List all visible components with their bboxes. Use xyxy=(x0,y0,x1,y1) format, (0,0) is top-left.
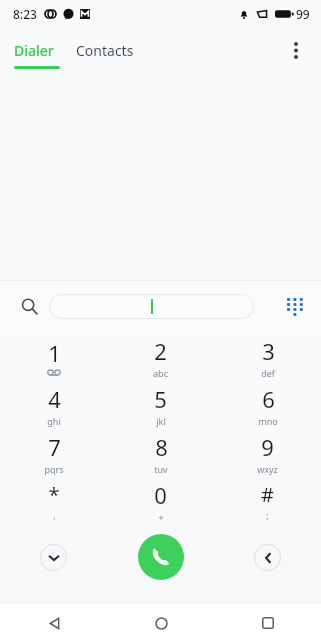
staticText: 6 xyxy=(262,384,275,414)
staticText: pqrs xyxy=(44,463,64,475)
staticText: 7 xyxy=(48,432,61,462)
staticText: tuv xyxy=(154,463,168,475)
button[interactable]: Dialpad xyxy=(279,290,311,322)
button[interactable]: 1 xyxy=(0,333,107,381)
button[interactable]: Back xyxy=(35,604,73,642)
button[interactable]: Home xyxy=(142,604,180,642)
button[interactable]: 2 xyxy=(107,333,214,381)
button[interactable]: 4 xyxy=(0,381,107,429)
button[interactable]: 5 xyxy=(107,381,214,429)
staticText: 99 xyxy=(296,6,310,22)
button[interactable]: Contacts xyxy=(68,35,142,66)
button[interactable]: # xyxy=(214,477,321,525)
staticText: 5 xyxy=(154,384,167,414)
staticText: 9 xyxy=(261,432,274,462)
button[interactable]: Backspace xyxy=(254,544,281,571)
button[interactable] xyxy=(49,294,254,319)
staticText: 3 xyxy=(262,336,275,366)
staticText: def xyxy=(261,367,275,379)
staticText: 2 xyxy=(154,336,167,366)
button[interactable]: 7 xyxy=(0,429,107,477)
staticText: , xyxy=(53,509,56,521)
button[interactable]: 9 xyxy=(214,429,321,477)
button[interactable]: 0 xyxy=(107,477,214,525)
staticText: 8 xyxy=(155,432,168,462)
staticText: + xyxy=(158,511,164,523)
staticText: 4 xyxy=(48,384,61,414)
staticText: mno xyxy=(258,415,278,427)
staticText: Dialer xyxy=(14,41,54,60)
staticText: ; xyxy=(266,509,269,521)
staticText: 0 xyxy=(154,480,167,510)
staticText: Contacts xyxy=(76,41,134,60)
staticText: ghi xyxy=(47,415,61,427)
button[interactable]: Call xyxy=(138,534,184,580)
button[interactable]: Search xyxy=(13,290,45,322)
staticText: # xyxy=(261,481,274,508)
button[interactable]: Recents xyxy=(249,604,287,642)
staticText: 8:23 xyxy=(13,6,37,22)
button[interactable]: Hide keypad xyxy=(40,544,67,571)
button[interactable]: 6 xyxy=(214,381,321,429)
button[interactable]: 3 xyxy=(214,333,321,381)
button[interactable]: Dialer xyxy=(0,35,68,66)
staticText: * xyxy=(48,481,60,508)
staticText: wxyz xyxy=(257,463,278,475)
button[interactable]: 8 xyxy=(107,429,214,477)
staticText: abc xyxy=(153,367,168,379)
staticText: 1 xyxy=(48,338,61,368)
button[interactable]: * xyxy=(0,477,107,525)
button[interactable]: More options xyxy=(279,33,313,67)
staticText: jkl xyxy=(156,415,166,427)
